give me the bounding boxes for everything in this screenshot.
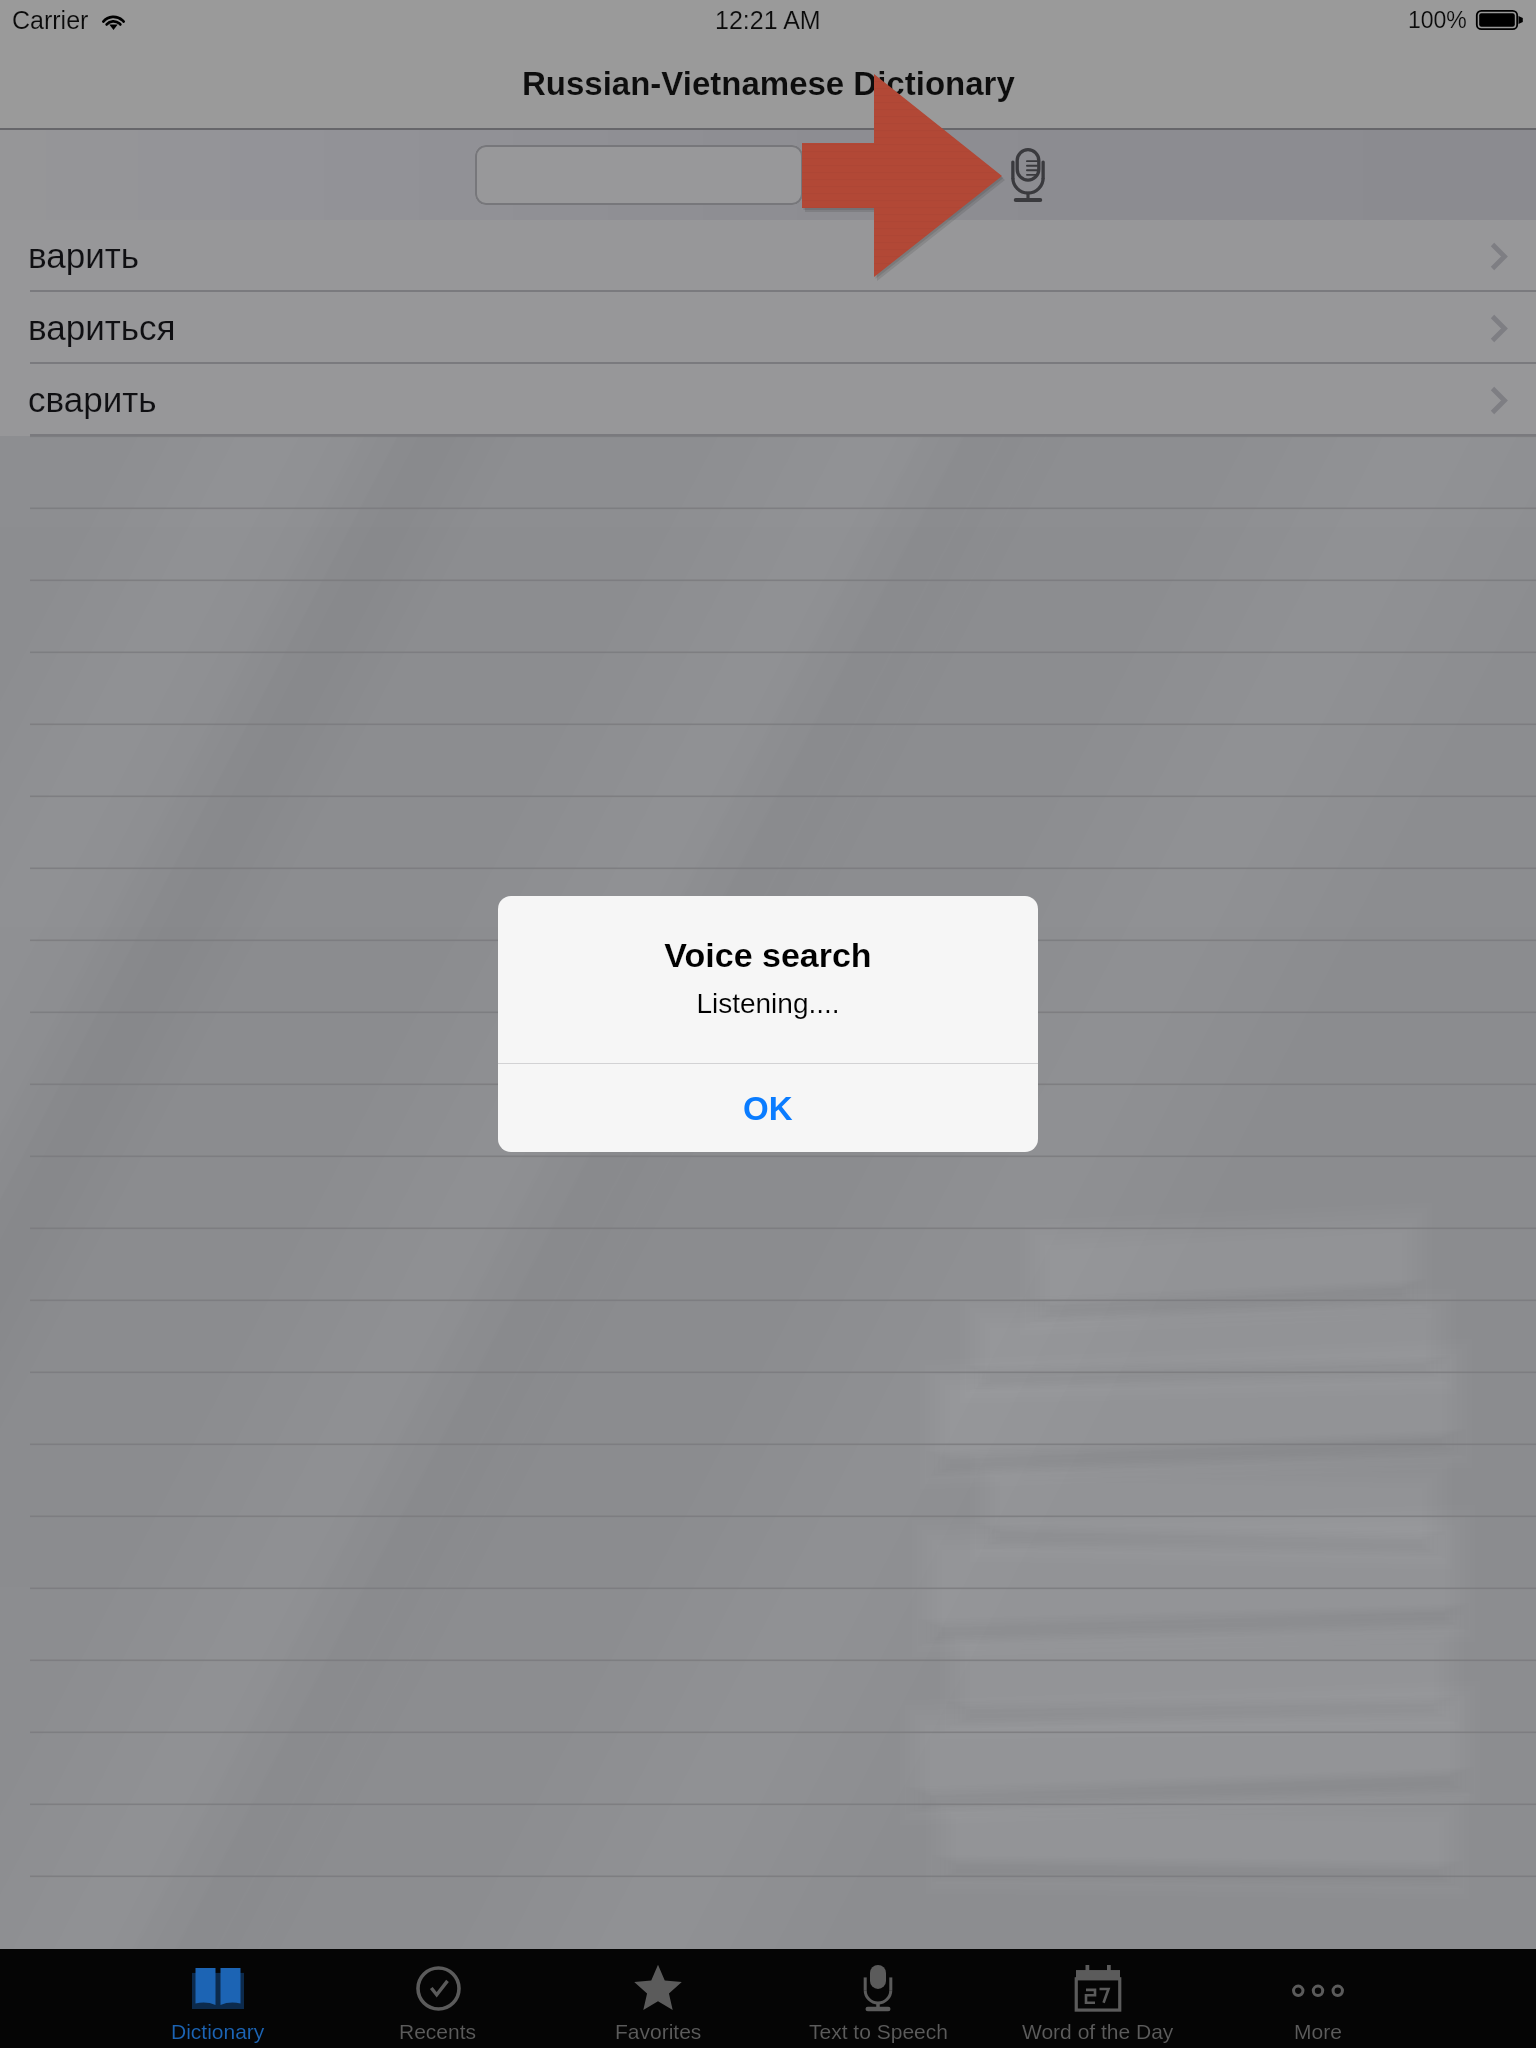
staticText: Listening.... xyxy=(696,988,840,1019)
staticText: Text to Speech xyxy=(809,2020,948,2043)
staticText: Voice search xyxy=(664,936,872,974)
staticText: Russian-Vietnamese Dictionary xyxy=(522,65,1015,102)
button[interactable]: More xyxy=(1208,1949,1428,2048)
button[interactable]: Dictionary xyxy=(108,1949,328,2048)
staticText: 12:21 AM xyxy=(715,6,821,34)
button[interactable]: Recents xyxy=(328,1949,548,2048)
staticText: Favorites xyxy=(615,2020,702,2043)
button[interactable]: OK xyxy=(498,1064,1038,1152)
button[interactable]: сварить xyxy=(0,364,1536,436)
staticText: сварить xyxy=(28,380,157,419)
staticText: More xyxy=(1294,2020,1342,2043)
button[interactable]: вариться xyxy=(0,292,1536,364)
button[interactable]: варить xyxy=(0,220,1536,292)
staticText: варить xyxy=(28,236,139,275)
staticText: вариться xyxy=(28,308,176,347)
staticText: Word of the Day xyxy=(1022,2020,1174,2043)
staticText: Recents xyxy=(399,2020,477,2043)
button[interactable] xyxy=(475,145,803,205)
staticText: 100% xyxy=(1408,7,1467,33)
staticText: Carrier xyxy=(12,6,89,34)
button[interactable]: Text to Speech xyxy=(768,1949,988,2048)
button[interactable]: Favorites xyxy=(548,1949,768,2048)
button[interactable]: Word of the Day xyxy=(988,1949,1208,2048)
staticText: OK xyxy=(743,1090,793,1127)
staticText: Dictionary xyxy=(171,2020,265,2043)
button[interactable]: Voice search xyxy=(994,141,1062,209)
